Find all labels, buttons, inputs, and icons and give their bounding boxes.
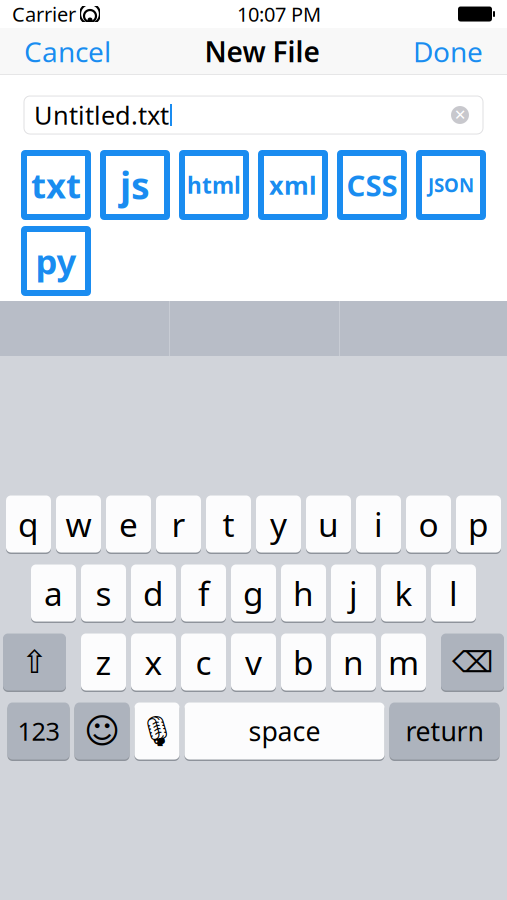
button[interactable]: Done — [403, 25, 493, 78]
button[interactable]: l — [431, 564, 476, 621]
button[interactable]: r — [156, 495, 201, 552]
staticText: c — [195, 640, 211, 684]
button[interactable]: Dictate — [134, 702, 179, 759]
staticText: n — [343, 640, 364, 684]
staticText: u — [318, 502, 339, 546]
button[interactable]: CSS file — [340, 153, 404, 217]
button[interactable]: v — [231, 633, 276, 690]
button[interactable]: e — [106, 495, 151, 552]
button[interactable]: Emoji — [74, 702, 129, 759]
staticText: html — [187, 170, 241, 200]
staticText: Untitled.txt — [34, 98, 169, 132]
button[interactable]: Numbers — [7, 702, 69, 759]
button[interactable]: d — [131, 564, 176, 621]
staticText: return — [405, 713, 483, 749]
staticText: Done — [413, 33, 483, 70]
staticText: 🎙 — [138, 714, 175, 748]
button[interactable]: js file — [103, 153, 167, 217]
button[interactable]: h — [281, 564, 326, 621]
button[interactable]: j — [331, 564, 376, 621]
staticText: Cancel — [24, 33, 111, 70]
button[interactable]: o — [406, 495, 451, 552]
button[interactable]: s — [81, 564, 126, 621]
staticText: New File — [204, 33, 319, 70]
staticText: k — [394, 571, 412, 615]
button[interactable]: return — [389, 702, 499, 759]
button[interactable]: n — [331, 633, 376, 690]
button[interactable]: t — [206, 495, 251, 552]
button[interactable]: q — [6, 495, 51, 552]
staticText: JSON — [428, 173, 474, 197]
button[interactable]: w — [56, 495, 101, 552]
staticText: 123 — [17, 714, 59, 748]
staticText: Carrier — [12, 1, 76, 27]
staticText: z — [95, 640, 111, 684]
staticText: o — [418, 502, 438, 546]
staticText: v — [245, 640, 262, 684]
staticText: xml — [269, 168, 317, 202]
button[interactable]: Cancel — [14, 25, 121, 78]
button[interactable]: m — [381, 633, 426, 690]
staticText: r — [171, 502, 185, 546]
staticText: a — [44, 571, 63, 615]
staticText: y — [270, 502, 287, 546]
button[interactable]: z — [81, 633, 126, 690]
button[interactable]: space — [184, 702, 384, 759]
staticText: q — [18, 502, 39, 546]
staticText: ⇧ — [21, 644, 48, 680]
staticText: h — [293, 571, 314, 615]
staticText: m — [388, 640, 419, 684]
staticText: ✕ — [454, 107, 466, 123]
staticText: f — [198, 571, 209, 615]
button[interactable]: txt file — [24, 153, 88, 217]
button[interactable]: b — [281, 633, 326, 690]
staticText: py — [35, 238, 76, 284]
staticText: ⌫ — [452, 645, 493, 679]
button[interactable]: f — [181, 564, 226, 621]
staticText: ☺ — [84, 711, 120, 751]
staticText: s — [95, 571, 111, 615]
button[interactable]: g — [231, 564, 276, 621]
staticText: d — [143, 571, 164, 615]
staticText — [76, 3, 80, 25]
button[interactable]: JSON file — [419, 153, 483, 217]
button[interactable]: k — [381, 564, 426, 621]
button[interactable]: u — [306, 495, 351, 552]
button[interactable]: xml file — [261, 153, 325, 217]
staticText: j — [349, 571, 358, 615]
staticText: 10:07 PM — [237, 1, 321, 27]
staticText: x — [144, 640, 162, 684]
staticText: l — [449, 571, 458, 615]
staticText: g — [243, 571, 264, 615]
button[interactable]: Clear text — [447, 102, 473, 128]
button[interactable]: p — [456, 495, 501, 552]
staticText: e — [119, 502, 138, 546]
staticText: b — [293, 640, 314, 684]
button[interactable]: Shift — [3, 633, 66, 690]
button[interactable]: a — [31, 564, 76, 621]
button[interactable]: c — [181, 633, 226, 690]
button[interactable]: py file — [24, 229, 88, 293]
staticText: i — [374, 502, 383, 546]
staticText: txt — [31, 162, 81, 208]
staticText: p — [468, 502, 489, 546]
button[interactable]: y — [256, 495, 301, 552]
staticText: w — [65, 502, 91, 546]
staticText: t — [222, 502, 234, 546]
button[interactable]: x — [131, 633, 176, 690]
button[interactable]: html file — [182, 153, 246, 217]
staticText: js — [120, 160, 150, 210]
button[interactable]: Delete — [441, 633, 504, 690]
staticText: space — [248, 713, 320, 749]
button[interactable]: i — [356, 495, 401, 552]
staticText: CSS — [346, 165, 397, 204]
